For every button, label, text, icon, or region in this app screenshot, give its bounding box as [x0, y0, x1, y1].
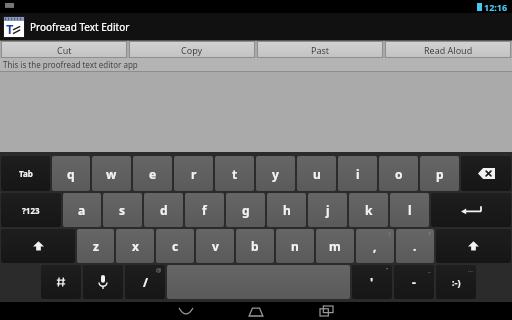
- button[interactable]: f: [185, 193, 224, 227]
- button[interactable]: [167, 265, 350, 299]
- button[interactable]: Settings: [41, 265, 81, 299]
- button[interactable]: Voice input: [83, 265, 123, 299]
- button[interactable]: Hide keyboard: [151, 302, 221, 320]
- button[interactable]: Home: [221, 302, 291, 320]
- button[interactable]: r: [174, 156, 213, 191]
- button[interactable]: i: [338, 156, 377, 191]
- staticText: u: [313, 166, 321, 182]
- staticText: Tab: [19, 168, 33, 179]
- staticText: x: [132, 238, 139, 254]
- staticText: ,: [373, 238, 377, 254]
- staticText: g: [242, 202, 250, 218]
- button[interactable]: g: [226, 193, 265, 227]
- button[interactable]: a: [63, 193, 101, 227]
- button[interactable]: y: [256, 156, 295, 191]
- button[interactable]: ?: [396, 229, 434, 263]
- staticText: !: [389, 230, 391, 238]
- button[interactable]: Read Aloud: [386, 42, 510, 57]
- staticText: r: [191, 166, 197, 182]
- button[interactable]: b: [236, 229, 274, 263]
- staticText: b: [251, 238, 259, 254]
- staticText: c: [172, 238, 179, 254]
- staticText: :-): [452, 276, 461, 288]
- button[interactable]: o: [379, 156, 418, 191]
- staticText: p: [436, 166, 444, 182]
- staticText: j: [326, 202, 330, 218]
- button[interactable]: w: [92, 156, 131, 191]
- button[interactable]: Enter: [431, 193, 511, 227]
- button[interactable]: ?123: [1, 193, 61, 227]
- staticText: s: [119, 202, 126, 218]
- staticText: m: [329, 238, 341, 254]
- button[interactable]: d: [144, 193, 183, 227]
- staticText: Proofread Text Editor: [30, 20, 130, 34]
- staticText: f: [202, 202, 207, 218]
- staticText: /: [143, 274, 148, 290]
- button[interactable]: z: [77, 229, 114, 263]
- button[interactable]: Shift: [1, 229, 75, 263]
- staticText: y: [272, 166, 279, 182]
- button[interactable]: n: [276, 229, 314, 263]
- button[interactable]: _: [394, 265, 434, 299]
- button[interactable]: x: [116, 229, 154, 263]
- staticText: -: [412, 274, 416, 290]
- staticText: .: [413, 238, 417, 254]
- button[interactable]: Copy: [130, 42, 254, 57]
- button[interactable]: Tab: [1, 156, 50, 191]
- staticText: d: [160, 202, 168, 218]
- button[interactable]: l: [390, 193, 429, 227]
- staticText: ?123: [22, 205, 40, 216]
- staticText: h: [283, 202, 291, 218]
- button[interactable]: !: [356, 229, 394, 263]
- staticText: w: [106, 166, 117, 182]
- staticText: z: [93, 238, 99, 254]
- staticText: i: [356, 166, 360, 182]
- staticText: a: [78, 202, 86, 218]
- staticText: T: [6, 20, 14, 37]
- staticText: l: [408, 202, 412, 218]
- staticText: Copy: [181, 44, 203, 56]
- button[interactable]: e: [133, 156, 172, 191]
- button[interactable]: m: [316, 229, 354, 263]
- button[interactable]: q: [52, 156, 90, 191]
- staticText: k: [365, 202, 373, 218]
- staticText: @: [156, 266, 162, 274]
- staticText: ...: [468, 266, 473, 274]
- staticText: Read Aloud: [424, 44, 473, 56]
- button[interactable]: Shift: [436, 229, 511, 263]
- staticText: Cut: [57, 44, 72, 56]
- staticText: e: [149, 166, 157, 182]
- staticText: v: [212, 238, 219, 254]
- button[interactable]: Past: [258, 42, 382, 57]
- staticText: ?: [428, 230, 431, 238]
- button[interactable]: v: [196, 229, 234, 263]
- staticText: ": [386, 266, 389, 274]
- staticText: q: [67, 166, 75, 182]
- button[interactable]: ...: [436, 265, 476, 299]
- staticText: _: [428, 266, 431, 274]
- button[interactable]: j: [308, 193, 347, 227]
- staticText: n: [291, 238, 299, 254]
- staticText: Past: [311, 44, 330, 56]
- button[interactable]: ": [352, 265, 392, 299]
- button[interactable]: c: [156, 229, 194, 263]
- button[interactable]: p: [420, 156, 459, 191]
- staticText: 12:16: [484, 1, 508, 13]
- button[interactable]: s: [103, 193, 142, 227]
- staticText: This is the proofread text editor app: [3, 59, 138, 70]
- button[interactable]: u: [297, 156, 336, 191]
- staticText: t: [232, 166, 238, 182]
- staticText: ': [370, 274, 374, 290]
- button[interactable]: Backspace: [461, 156, 511, 191]
- button[interactable]: Recent apps: [291, 302, 361, 320]
- staticText: o: [395, 166, 403, 182]
- button[interactable]: Cut: [2, 42, 126, 57]
- button[interactable]: k: [349, 193, 388, 227]
- button[interactable]: t: [215, 156, 254, 191]
- button[interactable]: @: [125, 265, 165, 299]
- button[interactable]: h: [267, 193, 306, 227]
